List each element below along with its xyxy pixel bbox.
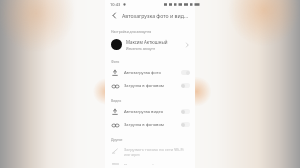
button[interactable]: Автозагрузка видео bbox=[105, 105, 195, 118]
staticText: 10:43 bbox=[110, 2, 121, 7]
staticText: Автозагрузка фото bbox=[124, 70, 181, 76]
button[interactable]: Автозагрузка фото bbox=[105, 66, 195, 79]
staticText: Видео bbox=[111, 98, 122, 103]
staticText: Автозагрузка фото и видео bbox=[122, 12, 189, 19]
staticText: Загрузка в фоновом bbox=[124, 122, 181, 128]
staticText: Загружать только по сети Wi-Fi bbox=[124, 147, 184, 152]
staticText: Загрузка в фоновом bbox=[124, 83, 181, 89]
staticText: Настройки для аккаунта bbox=[111, 29, 152, 34]
staticText: Папки на телефоне bbox=[124, 163, 162, 165]
button[interactable]: Загрузка в фоновом bbox=[105, 118, 195, 131]
button[interactable]: Назад bbox=[109, 10, 120, 21]
button[interactable]: Переключатель bbox=[181, 109, 190, 114]
staticText: Автозагрузка видео bbox=[124, 109, 181, 115]
button[interactable]: Переключатель bbox=[181, 122, 190, 127]
staticText: Другое bbox=[111, 137, 123, 142]
button[interactable]: Переключатель bbox=[181, 83, 190, 88]
button[interactable]: Загружать только по сети Wi-Fi bbox=[105, 144, 195, 160]
staticText: Фото bbox=[111, 59, 120, 64]
staticText: Изменить аккаунт bbox=[126, 46, 156, 50]
button[interactable]: Переключатель bbox=[181, 70, 190, 75]
button[interactable]: Папки на телефоне bbox=[105, 160, 195, 168]
staticText: или через bbox=[124, 153, 140, 157]
staticText: Максим Актюшный bbox=[126, 39, 168, 45]
button[interactable]: Загрузка в фоновом bbox=[105, 79, 195, 92]
button[interactable]: Максим Актюшный bbox=[105, 36, 195, 53]
